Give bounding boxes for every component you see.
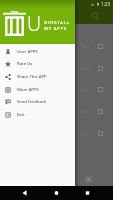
button[interactable]: Exit: [0, 108, 75, 121]
staticText: NINSTALL: [44, 20, 70, 26]
button[interactable]: App: [0, 78, 113, 100]
button[interactable]: App: [0, 57, 113, 79]
staticText: App: [82, 131, 90, 136]
staticText: App: [82, 66, 90, 71]
staticText: MY APPS: [44, 26, 68, 32]
button[interactable]: Search: [90, 11, 101, 22]
staticText: App: [82, 87, 90, 92]
button[interactable]: Send feedback: [0, 95, 75, 108]
staticText: U: [27, 10, 42, 37]
button[interactable]: More APPS: [0, 83, 75, 96]
button[interactable]: Home: [50, 186, 63, 200]
staticText: App: [82, 44, 90, 49]
button[interactable]: App: [0, 100, 113, 122]
button[interactable]: User APPS: [0, 45, 75, 58]
staticText: More APPS: [17, 87, 39, 93]
staticText: Rate Us: [17, 61, 33, 67]
button[interactable]: App: [0, 122, 113, 144]
button[interactable]: App: [0, 35, 113, 57]
button[interactable]: Share This APP: [0, 70, 75, 83]
staticText: User APPS: [17, 49, 38, 55]
staticText: Exit: [17, 112, 25, 118]
button[interactable]: Rate Us: [0, 57, 75, 70]
button[interactable]: Recents: [81, 186, 94, 200]
staticText: App: [82, 109, 90, 114]
staticText: 1:25: [101, 1, 111, 7]
staticText: Share This APP: [17, 74, 47, 80]
staticText: Send feedback: [17, 99, 47, 105]
button[interactable]: Back: [18, 186, 31, 200]
button[interactable]: [0, 172, 113, 186]
